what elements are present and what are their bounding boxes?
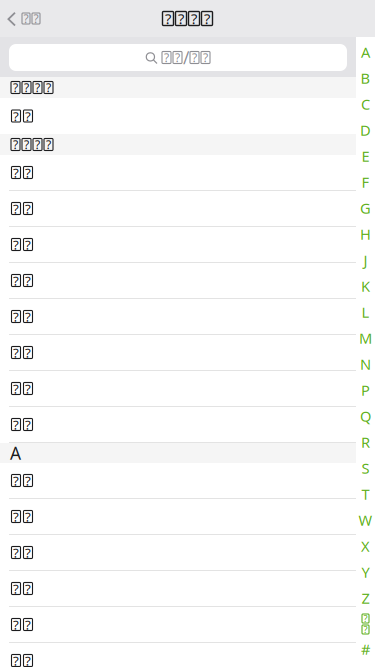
button[interactable]: ?	[0, 191, 356, 227]
staticText: ?	[175, 49, 180, 65]
staticText: A	[361, 42, 370, 62]
staticText: T	[361, 484, 369, 504]
staticText: R	[361, 432, 370, 452]
button[interactable]: E	[356, 143, 375, 169]
button[interactable]: ?	[0, 299, 356, 335]
button[interactable]: ?	[0, 155, 356, 191]
staticText: ?	[46, 136, 51, 152]
staticText: ?	[24, 79, 29, 95]
staticText: ?	[13, 200, 19, 217]
button[interactable]: X	[356, 533, 375, 559]
staticText: J	[363, 250, 367, 270]
button[interactable]: ?	[0, 37, 356, 77]
staticText: ?	[13, 308, 19, 325]
staticText: ?	[192, 49, 197, 65]
staticText: ?	[25, 107, 31, 125]
staticText: ?	[25, 580, 31, 597]
button[interactable]: G	[356, 195, 375, 221]
button[interactable]: ?	[0, 335, 356, 371]
staticText: ?	[13, 652, 19, 667]
button[interactable]: B	[356, 65, 375, 91]
staticText: ?	[25, 416, 31, 433]
button[interactable]: K	[356, 273, 375, 299]
button[interactable]: W	[356, 507, 375, 533]
button[interactable]: Popular cities	[356, 611, 375, 637]
staticText: ?	[13, 580, 19, 597]
button[interactable]: ?	[0, 571, 356, 607]
staticText: ?	[25, 380, 31, 397]
button[interactable]: ?	[0, 607, 356, 643]
staticText: ?	[13, 344, 19, 361]
staticText: S	[361, 458, 369, 478]
staticText: C	[361, 94, 370, 114]
staticText: ?	[25, 272, 31, 289]
staticText: ?	[178, 9, 184, 28]
staticText: /	[183, 46, 189, 69]
button[interactable]: S	[356, 455, 375, 481]
button[interactable]: ?	[0, 227, 356, 263]
staticText: ?	[33, 10, 38, 26]
staticText: ?	[25, 236, 31, 253]
staticText: ?	[13, 272, 19, 289]
staticText: ?	[203, 49, 208, 65]
button[interactable]: Q	[356, 403, 375, 429]
staticText: ?	[25, 308, 31, 325]
button[interactable]: Z	[356, 585, 375, 611]
button[interactable]: N	[356, 351, 375, 377]
button[interactable]: ?	[0, 263, 356, 299]
button[interactable]: ?	[0, 499, 356, 535]
staticText: W	[358, 510, 372, 530]
button[interactable]: ?	[0, 463, 356, 499]
staticText: ?	[13, 380, 19, 397]
staticText: ?	[13, 508, 19, 525]
staticText: ?	[25, 508, 31, 525]
staticText: ?	[25, 164, 31, 181]
staticText: ?	[25, 544, 31, 561]
staticText: ?	[35, 136, 40, 152]
button[interactable]: ?	[0, 98, 356, 134]
button[interactable]: D	[356, 117, 375, 143]
button[interactable]: Y	[356, 559, 375, 585]
staticText: #	[361, 639, 370, 659]
staticText: H	[360, 224, 371, 244]
button[interactable]: P	[356, 377, 375, 403]
staticText: ?	[23, 10, 28, 26]
staticText: ?	[191, 9, 197, 28]
staticText: X	[361, 536, 370, 556]
button[interactable]: H	[356, 221, 375, 247]
staticText: ?	[13, 544, 19, 561]
staticText: ?	[204, 9, 210, 28]
button[interactable]: M	[356, 325, 375, 351]
staticText: ?	[13, 472, 19, 489]
staticText: N	[360, 354, 371, 374]
button[interactable]: Back	[0, 1, 41, 35]
staticText: ?	[164, 49, 169, 65]
staticText: ?	[13, 416, 19, 433]
button[interactable]: T	[356, 481, 375, 507]
staticText: L	[361, 302, 369, 322]
button[interactable]: A	[356, 39, 375, 65]
staticText: ?	[24, 136, 29, 152]
staticText: Y	[361, 562, 369, 582]
staticText: ?	[13, 136, 18, 152]
button[interactable]: F	[356, 169, 375, 195]
staticText: ?	[13, 79, 18, 95]
staticText: G	[360, 198, 371, 218]
button[interactable]: J	[356, 247, 375, 273]
staticText: ?	[35, 79, 40, 95]
button[interactable]: ?	[0, 371, 356, 407]
button[interactable]: ?	[0, 407, 356, 443]
button[interactable]: R	[356, 429, 375, 455]
button[interactable]: #	[356, 637, 375, 661]
staticText: P	[361, 380, 370, 400]
button[interactable]: L	[356, 299, 375, 325]
staticText: D	[360, 120, 371, 140]
staticText: ?	[25, 616, 31, 633]
staticText: Z	[361, 588, 369, 608]
button[interactable]: ?	[0, 535, 356, 571]
staticText: B	[360, 68, 370, 88]
staticText: ?	[363, 623, 367, 636]
staticText: ?	[13, 107, 19, 125]
button[interactable]: ?	[0, 643, 356, 667]
button[interactable]: C	[356, 91, 375, 117]
